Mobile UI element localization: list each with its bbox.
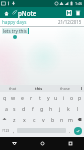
staticText: j <box>59 105 61 112</box>
staticText: 1:46 <box>75 1 83 6</box>
button[interactable]: Period <box>67 125 72 136</box>
staticText: k <box>67 105 70 112</box>
staticText: pNote <box>18 9 37 17</box>
button[interactable]: f <box>28 103 37 114</box>
button[interactable]: x <box>19 114 29 125</box>
staticText: m <box>68 116 73 123</box>
staticText: this <box>35 86 43 91</box>
button[interactable]: e <box>18 92 27 103</box>
staticText: d <box>22 105 26 112</box>
button[interactable]: Delete note <box>73 8 82 17</box>
staticText: g <box>40 105 44 112</box>
staticText: i <box>63 94 65 101</box>
staticText: b <box>51 116 55 123</box>
staticText: h <box>49 105 53 112</box>
staticText: n <box>60 116 64 123</box>
button[interactable]: ?123 <box>1 125 11 136</box>
staticText: s <box>13 105 16 112</box>
staticText: ?123 <box>2 128 10 133</box>
button[interactable]: that <box>0 85 26 92</box>
staticText: happy days <box>2 19 27 25</box>
staticText: w <box>11 94 16 101</box>
button[interactable]: Enter <box>72 125 83 136</box>
staticText: a <box>5 105 8 112</box>
button[interactable]: i <box>60 92 68 103</box>
staticText: that <box>9 86 17 91</box>
button[interactable]: j <box>55 103 64 114</box>
button[interactable]: h <box>46 103 55 114</box>
staticText: v <box>42 116 45 123</box>
button[interactable]: k <box>64 103 73 114</box>
button[interactable]: q <box>0 92 9 103</box>
staticText: p <box>78 94 82 101</box>
staticText: z <box>13 116 16 123</box>
staticText: q <box>3 94 7 101</box>
button[interactable]: Home <box>2 9 10 17</box>
staticText: x <box>23 116 26 123</box>
staticText: r <box>30 94 33 101</box>
button[interactable]: Save note <box>64 8 73 17</box>
button[interactable]: r <box>27 92 36 103</box>
staticText: t <box>39 94 41 101</box>
staticText: c <box>33 116 36 123</box>
button[interactable]: a <box>2 103 10 114</box>
button[interactable]: Back <box>0 137 28 150</box>
button[interactable]: shift <box>0 114 9 125</box>
staticText: y <box>47 94 50 101</box>
button[interactable]: More suggestions <box>78 85 84 92</box>
staticText: f <box>32 105 34 112</box>
button[interactable]: u <box>52 92 60 103</box>
button[interactable]: Comma <box>11 125 16 136</box>
button[interactable]: g <box>37 103 46 114</box>
button[interactable]: w <box>9 92 18 103</box>
staticText: . <box>69 128 71 134</box>
staticText: u <box>54 94 58 101</box>
button[interactable]: b <box>48 114 57 125</box>
button[interactable]: t <box>36 92 44 103</box>
button[interactable]: m <box>66 114 75 125</box>
staticText: e <box>21 94 24 101</box>
button[interactable]: those <box>52 85 78 92</box>
staticText: , <box>13 128 15 134</box>
staticText: those <box>60 86 70 91</box>
button[interactable]: this <box>26 85 52 92</box>
button[interactable]: l <box>73 103 82 114</box>
button[interactable]: c <box>29 114 39 125</box>
button[interactable]: p <box>76 92 84 103</box>
button[interactable]: Home <box>28 137 56 150</box>
button[interactable]: z <box>9 114 19 125</box>
button[interactable]: Backspace <box>75 114 84 125</box>
button[interactable]: o <box>68 92 76 103</box>
staticText: lets try this <box>3 28 27 34</box>
staticText: 21/12/2015 <box>58 19 82 25</box>
staticText: l <box>77 105 79 112</box>
button[interactable]: n <box>57 114 66 125</box>
button[interactable]: y <box>44 92 52 103</box>
button[interactable]: v <box>39 114 48 125</box>
button[interactable]: s <box>10 103 19 114</box>
button[interactable]: Recents <box>56 137 84 150</box>
button[interactable]: d <box>19 103 28 114</box>
staticText: o <box>70 94 74 101</box>
